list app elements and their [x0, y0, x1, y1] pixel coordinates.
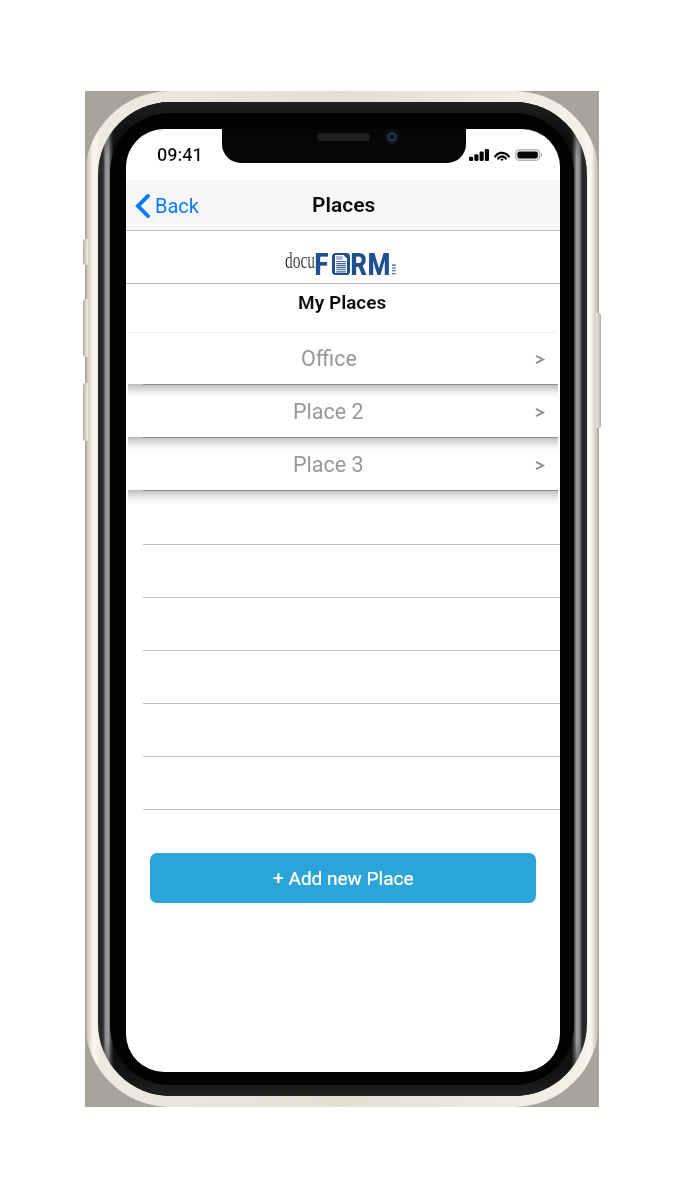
button[interactable]: + Add new Place [150, 853, 536, 903]
staticText: 09:41 [157, 144, 203, 165]
staticText: Places [312, 193, 376, 218]
button[interactable]: Place 3 [126, 438, 560, 491]
staticText: Place 2 [293, 399, 364, 424]
staticText: docu [285, 246, 315, 272]
staticText: Office [301, 346, 357, 371]
staticText: Back [155, 194, 199, 217]
staticText: Place 3 [293, 452, 364, 477]
staticText: + Add new Place [273, 867, 414, 889]
staticText: RM [350, 246, 391, 282]
staticText: My Places [298, 291, 387, 313]
button[interactable]: Back [130, 184, 206, 226]
staticText: F [314, 246, 329, 282]
button[interactable]: Office [126, 332, 560, 385]
button[interactable]: Place 2 [126, 385, 560, 438]
